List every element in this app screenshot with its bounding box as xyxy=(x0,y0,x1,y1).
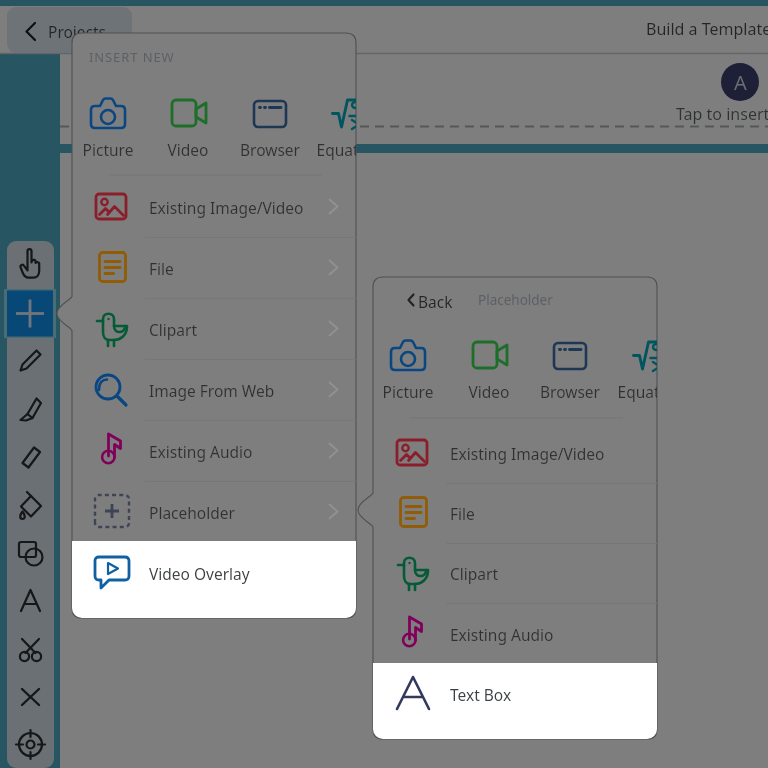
button[interactable]: Existing Audio xyxy=(373,603,657,664)
button[interactable]: Existing Image/Video xyxy=(72,176,356,237)
button[interactable]: Text xyxy=(7,577,54,624)
button[interactable]: Insert new xyxy=(4,289,56,338)
button[interactable]: Pan xyxy=(7,241,54,288)
button[interactable]: Fill xyxy=(7,481,54,528)
staticText: INSERT NEW xyxy=(89,48,175,66)
staticText: Existing Audio xyxy=(149,441,253,462)
button[interactable]: Cut xyxy=(7,625,54,672)
staticText: File xyxy=(149,258,174,279)
staticText: Clipart xyxy=(149,319,198,340)
staticText: Video xyxy=(148,139,228,160)
staticText: Projects xyxy=(48,21,107,42)
button[interactable]: Pen xyxy=(7,337,54,384)
button[interactable]: Clipart xyxy=(373,542,657,603)
staticText: Picture xyxy=(373,381,448,402)
button[interactable]: Picture xyxy=(72,89,148,155)
button[interactable]: Projects xyxy=(7,7,132,53)
button[interactable]: Clipart xyxy=(72,298,356,359)
button[interactable]: File xyxy=(373,482,657,543)
button[interactable]: Existing Audio xyxy=(72,420,356,481)
staticText: Picture xyxy=(72,139,148,160)
button[interactable]: File xyxy=(72,237,356,298)
staticText: Existing Image/Video xyxy=(149,197,304,218)
button[interactable]: Laser pointer xyxy=(7,721,54,768)
staticText: Back xyxy=(418,291,453,312)
staticText: File xyxy=(450,503,475,524)
button[interactable]: Browser xyxy=(230,89,310,155)
button[interactable]: Picture xyxy=(373,331,448,397)
staticText: Existing Audio xyxy=(450,624,554,645)
button[interactable]: Equation xyxy=(610,331,657,397)
staticText: Build a Template xyxy=(646,18,768,40)
button[interactable] xyxy=(373,663,657,739)
staticText: Clipart xyxy=(450,563,499,584)
staticText: Browser xyxy=(530,381,610,402)
button[interactable] xyxy=(72,541,356,618)
button[interactable]: Highlighter xyxy=(7,385,54,432)
button[interactable]: Avatar xyxy=(721,63,759,101)
button[interactable]: Video xyxy=(449,331,529,397)
staticText: Video Overlay xyxy=(149,563,250,584)
button[interactable]: Video xyxy=(148,89,228,155)
staticText: Existing Image/Video xyxy=(450,443,605,464)
staticText: Video xyxy=(449,381,529,402)
button[interactable]: Text Box xyxy=(373,663,657,724)
staticText: Equation xyxy=(610,381,657,402)
button[interactable]: Shapes xyxy=(7,529,54,576)
staticText: Equation xyxy=(309,139,356,160)
button[interactable]: Existing Image/Video xyxy=(373,422,657,483)
staticText: A xyxy=(734,69,747,96)
button[interactable]: Back xyxy=(407,286,459,314)
button[interactable]: Delete xyxy=(7,673,54,720)
staticText: Browser xyxy=(230,139,310,160)
button[interactable]: Video Overlay xyxy=(72,542,356,603)
staticText: Placeholder xyxy=(149,502,235,523)
staticText: Image From Web xyxy=(149,380,275,401)
button[interactable]: Eraser xyxy=(7,433,54,480)
button[interactable]: Placeholder xyxy=(72,481,356,542)
button[interactable]: Browser xyxy=(530,331,610,397)
staticText: Text Box xyxy=(450,684,512,705)
button[interactable]: Image From Web xyxy=(72,359,356,420)
staticText: Tap to insert xyxy=(676,103,768,125)
staticText: Placeholder xyxy=(478,291,553,309)
button[interactable]: Equation xyxy=(309,89,356,155)
